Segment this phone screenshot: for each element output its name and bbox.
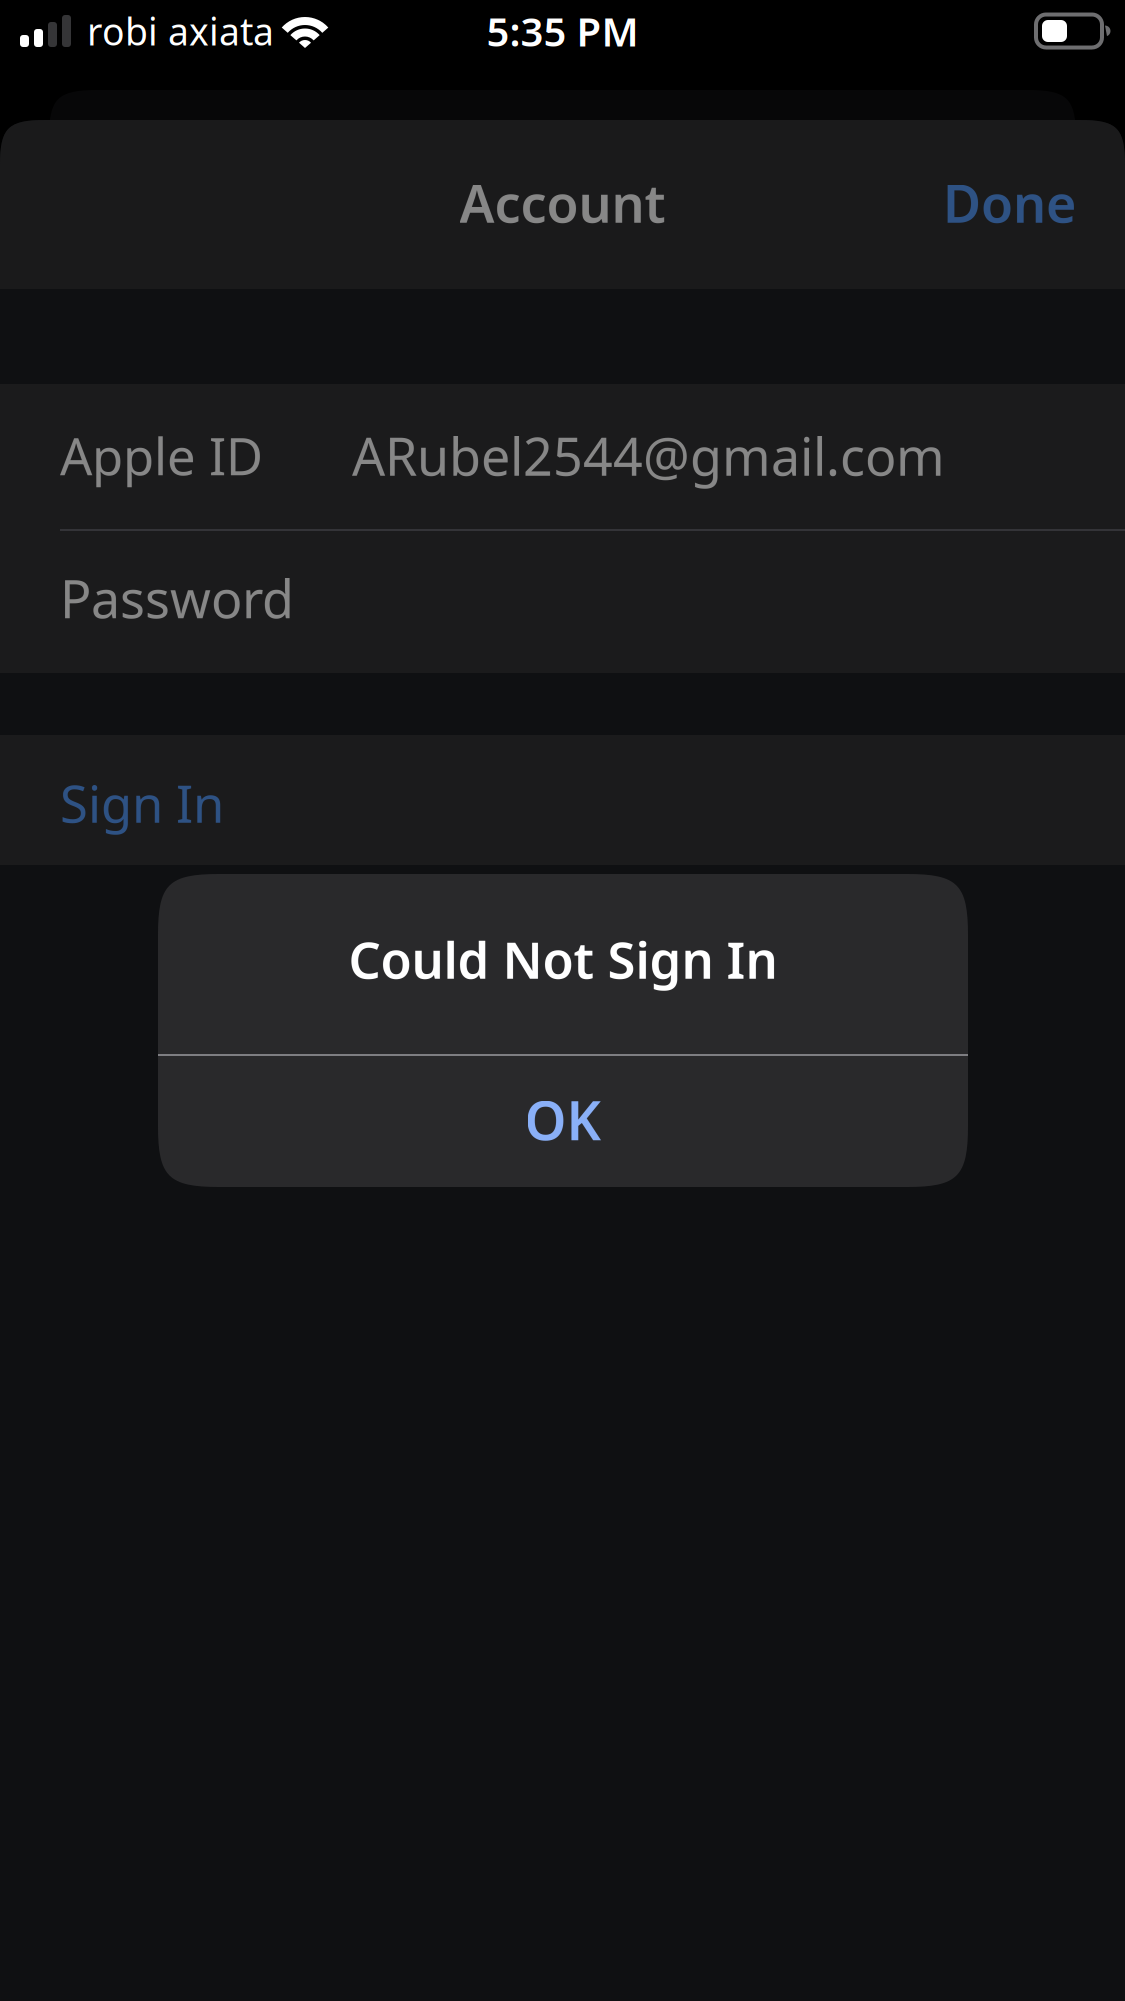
staticText: Could Not Sign In: [348, 925, 777, 993]
staticText: ARubel2544@gmail.com: [352, 421, 945, 490]
button[interactable]: Apple ID: [0, 384, 1125, 529]
staticText: Done: [943, 168, 1076, 237]
button[interactable]: Sign In: [0, 735, 1125, 865]
staticText: Password: [60, 563, 294, 633]
staticText: Account: [459, 168, 665, 237]
button[interactable]: OK: [158, 1056, 968, 1187]
staticText: 5:35 PM: [486, 4, 638, 57]
button[interactable]: Password: [0, 531, 1125, 673]
staticText: OK: [524, 1084, 601, 1155]
button[interactable]: Done: [919, 140, 1100, 269]
staticText: Apple ID: [60, 422, 263, 489]
staticText: robi axiata: [87, 6, 274, 56]
staticText: Sign In: [60, 769, 224, 837]
